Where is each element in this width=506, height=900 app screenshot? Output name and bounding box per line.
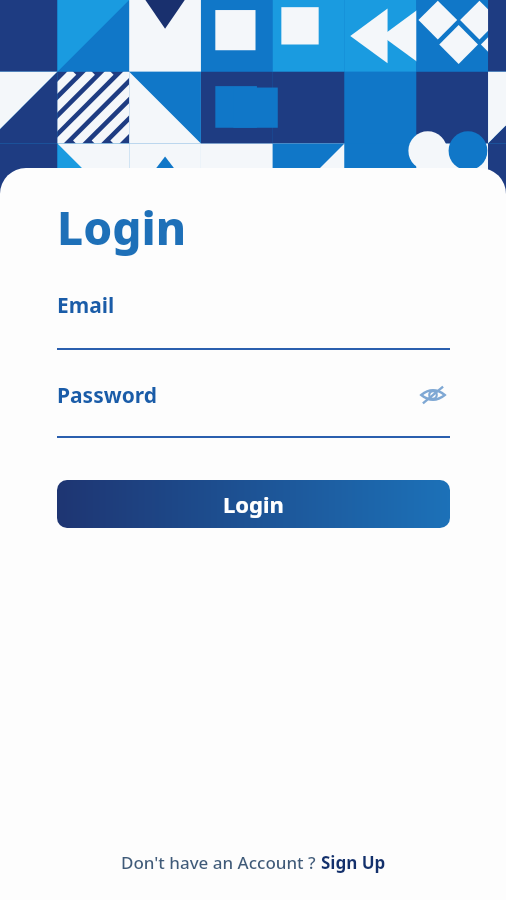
button[interactable]: Show password [416, 378, 450, 412]
staticText: Password [57, 381, 158, 410]
staticText: Don't have an Account ? [121, 851, 321, 874]
button[interactable]: Login [57, 480, 450, 528]
staticText: Login [223, 489, 284, 519]
staticText: Sign Up [321, 851, 386, 874]
staticText: Login [57, 196, 187, 259]
button[interactable]: Don't have an Account ? [121, 851, 386, 874]
staticText: Email [57, 291, 115, 320]
